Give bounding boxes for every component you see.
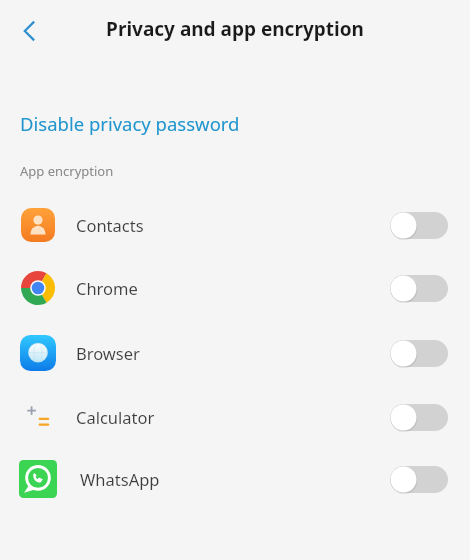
staticText: WhatsApp [80, 468, 160, 490]
staticText: Disable privacy password [20, 111, 240, 136]
button[interactable]: Toggle [390, 404, 448, 431]
button[interactable]: Disable privacy password [0, 109, 470, 138]
staticText: Browser [76, 342, 140, 364]
staticText: Calculator [76, 406, 155, 428]
staticText: Privacy and app encryption [106, 16, 364, 42]
button[interactable]: Calculator [0, 386, 470, 448]
button[interactable]: Chrome [0, 256, 470, 320]
button[interactable]: Toggle [390, 340, 448, 367]
button[interactable]: Toggle [390, 212, 448, 239]
staticText: Contacts [76, 214, 144, 236]
button[interactable]: Contacts [0, 194, 470, 256]
button[interactable]: Browser [0, 320, 470, 386]
staticText: Chrome [76, 277, 138, 299]
staticText: App encryption [20, 162, 114, 180]
button[interactable]: Back [8, 9, 52, 53]
button[interactable]: Toggle [390, 275, 448, 302]
button[interactable]: WhatsApp [0, 448, 470, 510]
button[interactable]: Toggle [390, 466, 448, 493]
